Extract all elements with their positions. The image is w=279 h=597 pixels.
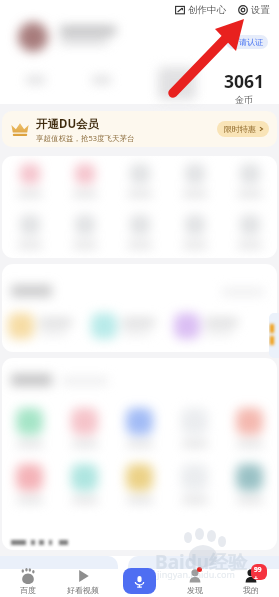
button[interactable]	[8, 313, 76, 339]
staticText: 设置	[251, 4, 270, 16]
button[interactable]: 开通DU会员	[2, 111, 277, 147]
staticText: 发现	[187, 585, 203, 595]
button[interactable]	[222, 408, 277, 447]
staticText: jingyan.baidu.com	[157, 568, 235, 580]
staticText: 享超值权益，抢53度飞天茅台	[36, 133, 135, 143]
button[interactable]	[91, 313, 159, 339]
button[interactable]: 百度	[0, 556, 55, 597]
staticText: 我的	[243, 585, 259, 595]
button[interactable]	[57, 408, 112, 447]
button[interactable]: 发现	[167, 556, 223, 597]
staticText: 99+	[254, 565, 264, 579]
button[interactable]: Floating tab	[269, 313, 279, 358]
button[interactable]	[57, 164, 112, 197]
button[interactable]: 限时特惠	[217, 121, 269, 137]
button[interactable]: 设置	[235, 2, 273, 18]
button[interactable]	[167, 215, 222, 248]
button[interactable]	[167, 164, 222, 197]
staticText: Baidu经验	[155, 549, 248, 575]
button[interactable]	[2, 408, 57, 447]
button[interactable]	[57, 464, 112, 503]
staticText: 好看视频	[67, 585, 99, 595]
staticText: 限时特惠	[224, 124, 256, 134]
button[interactable]	[112, 164, 167, 197]
button[interactable]	[112, 408, 167, 447]
button[interactable]	[2, 164, 57, 197]
button[interactable]: 申请认证	[226, 35, 268, 49]
button[interactable]: 好看视频	[55, 556, 111, 597]
button[interactable]	[57, 215, 112, 248]
button[interactable]: 99+	[223, 556, 279, 597]
staticText: 创作中心	[188, 4, 226, 16]
button[interactable]	[112, 464, 167, 503]
button[interactable]	[222, 164, 277, 197]
staticText: 申请认证	[231, 37, 263, 47]
button[interactable]	[2, 215, 57, 248]
button[interactable]	[222, 215, 277, 248]
staticText: 金币	[235, 94, 253, 105]
button[interactable]	[2, 464, 57, 503]
button[interactable]	[222, 464, 277, 503]
button[interactable]	[167, 464, 222, 503]
button[interactable]: 3061	[212, 69, 276, 105]
staticText: 开通DU会员	[36, 116, 100, 132]
button[interactable]: Voice search	[123, 568, 156, 594]
button[interactable]: 创作中心	[172, 2, 229, 18]
button[interactable]	[112, 215, 167, 248]
button[interactable]	[174, 313, 242, 339]
staticText: 百度	[20, 585, 36, 595]
button[interactable]	[167, 408, 222, 447]
staticText: 3061	[224, 69, 265, 93]
